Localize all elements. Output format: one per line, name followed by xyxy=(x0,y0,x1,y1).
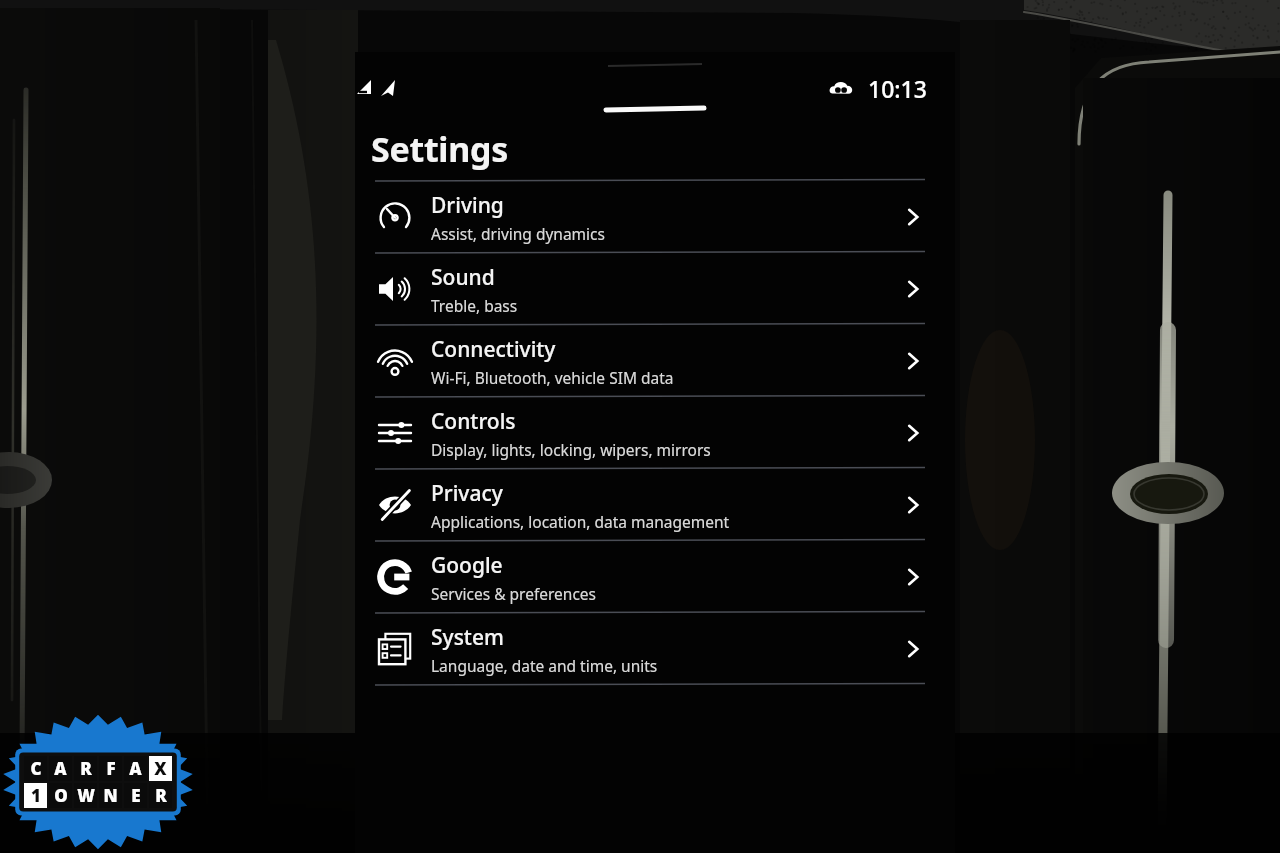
staticText: F xyxy=(106,757,116,780)
staticText: Sound xyxy=(431,263,495,292)
staticText: X xyxy=(154,757,167,780)
staticText: 10:13 xyxy=(868,73,927,104)
button[interactable]: Controls xyxy=(355,398,955,468)
other: Open Google xyxy=(901,565,925,589)
staticText: Wi-Fi, Bluetooth, vehicle SIM data xyxy=(431,367,674,388)
other: Open Sound xyxy=(901,277,925,301)
button[interactable]: Privacy xyxy=(355,470,955,540)
staticText: Treble, bass xyxy=(431,295,518,316)
staticText: R xyxy=(155,784,167,807)
staticText: Assist, driving dynamics xyxy=(431,223,605,244)
button[interactable]: Connectivity xyxy=(355,326,955,396)
staticText: R xyxy=(80,757,92,780)
staticText: A xyxy=(54,757,67,780)
staticText: Google xyxy=(431,551,503,580)
button[interactable]: Google xyxy=(355,542,955,612)
other: Open System xyxy=(901,637,925,661)
staticText: Services & preferences xyxy=(431,583,596,604)
staticText: Settings xyxy=(371,126,508,172)
staticText: A xyxy=(129,757,142,780)
staticText: O xyxy=(54,784,68,807)
staticText: System xyxy=(431,623,504,652)
staticText: E xyxy=(131,784,141,807)
button[interactable]: Driving xyxy=(355,182,955,252)
staticText: Controls xyxy=(431,407,516,436)
staticText: Language, date and time, units xyxy=(431,655,658,676)
other: Open Driving xyxy=(901,205,925,229)
staticText: Driving xyxy=(431,191,504,220)
staticText: Privacy xyxy=(431,479,503,508)
staticText: Connectivity xyxy=(431,335,556,364)
staticText: W xyxy=(77,784,95,807)
button[interactable]: Sound xyxy=(355,254,955,324)
other: Open Privacy xyxy=(901,493,925,517)
staticText: Applications, location, data management xyxy=(431,511,730,532)
button[interactable]: System xyxy=(355,614,955,684)
other: Open Controls xyxy=(901,421,925,445)
staticText: N xyxy=(103,784,118,807)
staticText: C xyxy=(30,757,42,780)
staticText: 1 xyxy=(31,784,41,807)
staticText: Display, lights, locking, wipers, mirror… xyxy=(431,439,711,460)
other: Open Connectivity xyxy=(901,349,925,373)
